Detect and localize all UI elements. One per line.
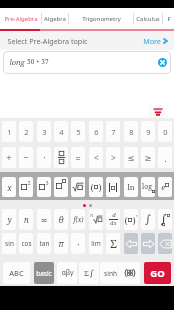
button[interactable]: 5: [71, 121, 85, 142]
button[interactable]: x: [2, 177, 16, 197]
staticText: <: [94, 152, 99, 164]
button[interactable]: 2: [19, 121, 33, 142]
button[interactable]: +: [2, 147, 16, 168]
button[interactable]: Algebra: [42, 8, 68, 29]
button[interactable]: Backspace: [158, 233, 172, 254]
button[interactable]: Hide keyboard: [148, 105, 168, 118]
staticText: Σ: [110, 236, 117, 251]
button[interactable]: sum integral: [79, 262, 99, 284]
button[interactable]: fraction: [54, 147, 68, 168]
staticText: −: [23, 151, 29, 164]
button[interactable]: 7: [106, 121, 120, 142]
button[interactable]: n: [19, 209, 33, 230]
button[interactable]: ≤: [124, 147, 138, 168]
button[interactable]: 6: [89, 121, 103, 142]
button[interactable]: −: [19, 147, 33, 168]
button[interactable]: square: [19, 177, 33, 197]
staticText: ≥: [144, 153, 152, 163]
staticText: ABC: [9, 268, 24, 278]
button[interactable]: log: [141, 177, 155, 197]
button[interactable]: derivative: [106, 209, 120, 230]
button[interactable]: cube: [37, 177, 51, 197]
button[interactable]: Σ: [106, 233, 120, 254]
button[interactable]: 9: [141, 121, 155, 142]
button[interactable]: F: [163, 8, 174, 29]
button[interactable]: Clear: [158, 58, 167, 67]
button[interactable]: =: [71, 147, 85, 168]
staticText: 7: [111, 127, 116, 137]
button[interactable]: 3: [37, 121, 51, 142]
button[interactable]: Move left: [124, 233, 138, 254]
staticText: y: [7, 214, 12, 225]
button[interactable]: parentheses: [89, 177, 103, 197]
staticText: ): [98, 181, 102, 193]
button[interactable]: sin: [2, 233, 16, 254]
button[interactable]: y: [2, 209, 16, 230]
button[interactable]: 0: [158, 121, 172, 142]
button[interactable]: θ: [54, 209, 68, 230]
button[interactable]: ∫: [141, 209, 155, 230]
staticText: Calculus: [136, 15, 160, 23]
button[interactable]: lim: [89, 233, 103, 254]
button[interactable]: ≥: [141, 147, 155, 168]
staticText: sinh: [104, 269, 117, 278]
staticText: ·: [77, 238, 80, 250]
staticText: 4: [59, 127, 64, 137]
button[interactable]: Trigonometry: [69, 8, 133, 29]
button[interactable]: definite integral: [158, 209, 172, 230]
staticText: ): [132, 214, 136, 226]
button[interactable]: exponential: [158, 177, 172, 197]
button[interactable]: cos: [19, 233, 33, 254]
button[interactable]: π: [54, 233, 68, 254]
button[interactable]: .: [158, 147, 172, 168]
staticText: ln: [127, 182, 135, 192]
staticText: Σ: [84, 268, 89, 278]
staticText: ′: [136, 213, 138, 223]
staticText: (: [124, 214, 128, 226]
staticText: d: [112, 211, 116, 219]
button[interactable]: More: [143, 36, 169, 46]
button[interactable]: Move right: [141, 233, 155, 254]
button[interactable]: 8: [124, 121, 138, 142]
button[interactable]: sinh: [100, 262, 120, 284]
staticText: 3: [45, 179, 49, 186]
button[interactable]: ABC: [3, 262, 30, 284]
staticText: tan: [39, 239, 50, 248]
staticText: long: [9, 57, 25, 67]
staticText: More: [143, 36, 161, 46]
staticText: f(x): [73, 215, 84, 224]
button[interactable]: ∞: [37, 209, 51, 230]
button[interactable]: prime: [124, 209, 138, 230]
staticText: 50 + 37: [25, 57, 49, 66]
button[interactable]: <: [89, 147, 103, 168]
staticText: e: [161, 182, 165, 192]
button[interactable]: basic: [34, 262, 54, 284]
button[interactable]: square root: [71, 177, 85, 197]
button[interactable]: 4: [54, 121, 68, 142]
staticText: F: [167, 15, 171, 23]
button[interactable]: nth root: [89, 209, 103, 230]
button[interactable]: Calculus: [134, 8, 162, 29]
button[interactable]: tan: [37, 233, 51, 254]
staticText: lim: [91, 239, 101, 248]
button[interactable]: matrix: [119, 262, 140, 284]
button[interactable]: >: [106, 147, 120, 168]
staticText: +: [6, 151, 12, 164]
staticText: π: [58, 238, 64, 250]
button[interactable]: ln: [124, 177, 138, 197]
button[interactable]: greek: [57, 262, 77, 284]
staticText: 2: [24, 127, 29, 137]
button[interactable]: absolute value: [106, 177, 120, 197]
button[interactable]: ·: [71, 233, 85, 254]
button[interactable]: f(x): [71, 209, 85, 230]
button[interactable]: ·: [37, 147, 51, 168]
button[interactable]: GO: [144, 262, 171, 284]
staticText: >: [111, 152, 116, 164]
staticText: ≤: [127, 153, 135, 163]
staticText: n: [24, 214, 29, 225]
button[interactable]: 1: [2, 121, 16, 142]
button[interactable]: long: [3, 51, 171, 74]
staticText: (: [90, 181, 94, 193]
button[interactable]: power: [54, 177, 68, 197]
button[interactable]: Pre-Algebra: [0, 8, 41, 29]
